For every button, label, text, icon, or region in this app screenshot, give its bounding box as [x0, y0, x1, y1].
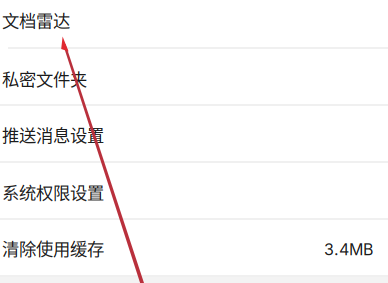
staticText: 清除使用缓存	[2, 235, 104, 261]
staticText: 推送消息设置	[2, 122, 104, 147]
staticText: 私密文件夹	[2, 66, 87, 91]
button[interactable]: 清除使用缓存	[0, 220, 388, 277]
staticText: 3.4MB	[324, 240, 373, 259]
button[interactable]: 文档雷达	[0, 0, 388, 49]
staticText: 系统权限设置	[2, 179, 104, 205]
button[interactable]: 系统权限设置	[0, 163, 388, 220]
button[interactable]: 推送消息设置	[0, 106, 388, 163]
button[interactable]: 私密文件夹	[0, 49, 388, 106]
staticText: 文档雷达	[2, 7, 70, 33]
